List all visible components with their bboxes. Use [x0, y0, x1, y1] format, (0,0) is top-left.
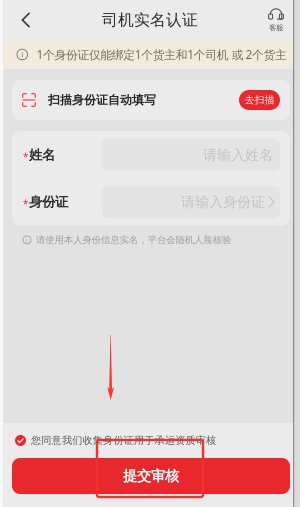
button[interactable]: 客服 [258, 0, 294, 40]
button[interactable]: 返回 [3, 0, 48, 40]
staticText: 请输入姓名 [203, 146, 273, 164]
staticText: 姓名 [29, 147, 55, 163]
button[interactable]: 提交审核 [12, 458, 290, 494]
staticText: i [26, 236, 28, 244]
staticText: 身份证 [29, 194, 68, 210]
staticText: 请使用本人身份信息实名，平台会随机人脸核验 [36, 234, 231, 246]
staticText: * [23, 197, 29, 210]
staticText: 请输入身份证 [181, 193, 265, 211]
staticText: i [21, 49, 23, 60]
button[interactable]: 扫描身份证自动填写 [12, 80, 290, 120]
staticText: 扫描身份证自动填写 [48, 92, 156, 107]
staticText: 司机实名认证 [102, 10, 198, 30]
staticText: 提交审核 [123, 467, 179, 485]
staticText: 去扫描 [244, 94, 274, 106]
button[interactable]: * [12, 178, 290, 225]
staticText: 客服 [269, 23, 283, 32]
staticText: 您同意我们收集身份证用于承运资质审核 [31, 434, 216, 447]
staticText: 1个身份证仅能绑定1个货主和1个司机 或 2个货主 [36, 46, 287, 62]
button[interactable]: 您同意我们收集身份证用于承运资质审核 [0, 423, 300, 458]
staticText: * [23, 150, 29, 163]
